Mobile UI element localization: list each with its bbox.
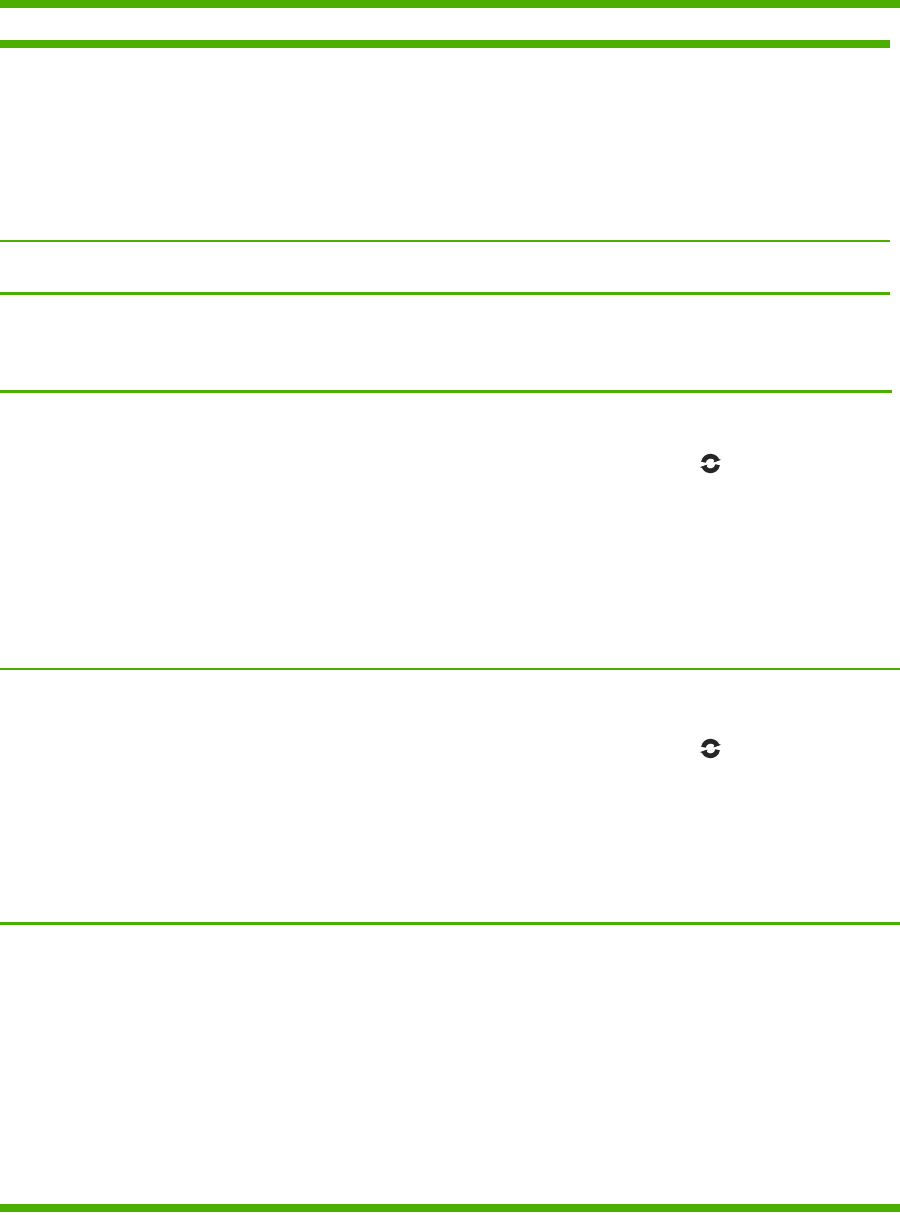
- button[interactable]: Sync: [0, 393, 900, 668]
- button[interactable]: Sync: [700, 453, 721, 474]
- button[interactable]: Sync: [0, 670, 900, 922]
- button[interactable]: Sync: [700, 738, 721, 759]
